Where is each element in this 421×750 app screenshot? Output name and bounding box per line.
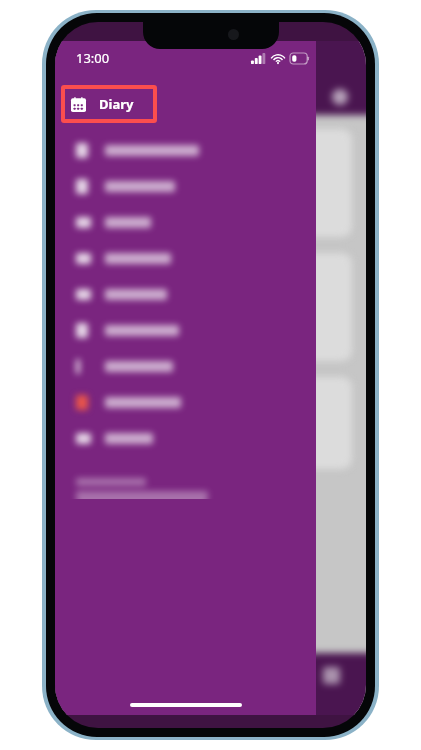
button[interactable]: [55, 168, 316, 204]
button[interactable]: [69, 129, 352, 237]
other: Diary calendar: [71, 97, 86, 112]
button[interactable]: [55, 420, 316, 456]
button[interactable]: [55, 132, 316, 168]
button[interactable]: [55, 204, 316, 240]
button[interactable]: Diary calendar: [65, 89, 153, 119]
button[interactable]: [69, 253, 352, 361]
button[interactable]: [55, 384, 316, 420]
button[interactable]: [55, 312, 316, 348]
staticText: 13:00: [76, 49, 110, 67]
button[interactable]: [55, 348, 316, 384]
button[interactable]: [55, 276, 316, 312]
button[interactable]: [69, 377, 352, 469]
staticText: Diary: [99, 95, 134, 113]
button[interactable]: [55, 240, 316, 276]
